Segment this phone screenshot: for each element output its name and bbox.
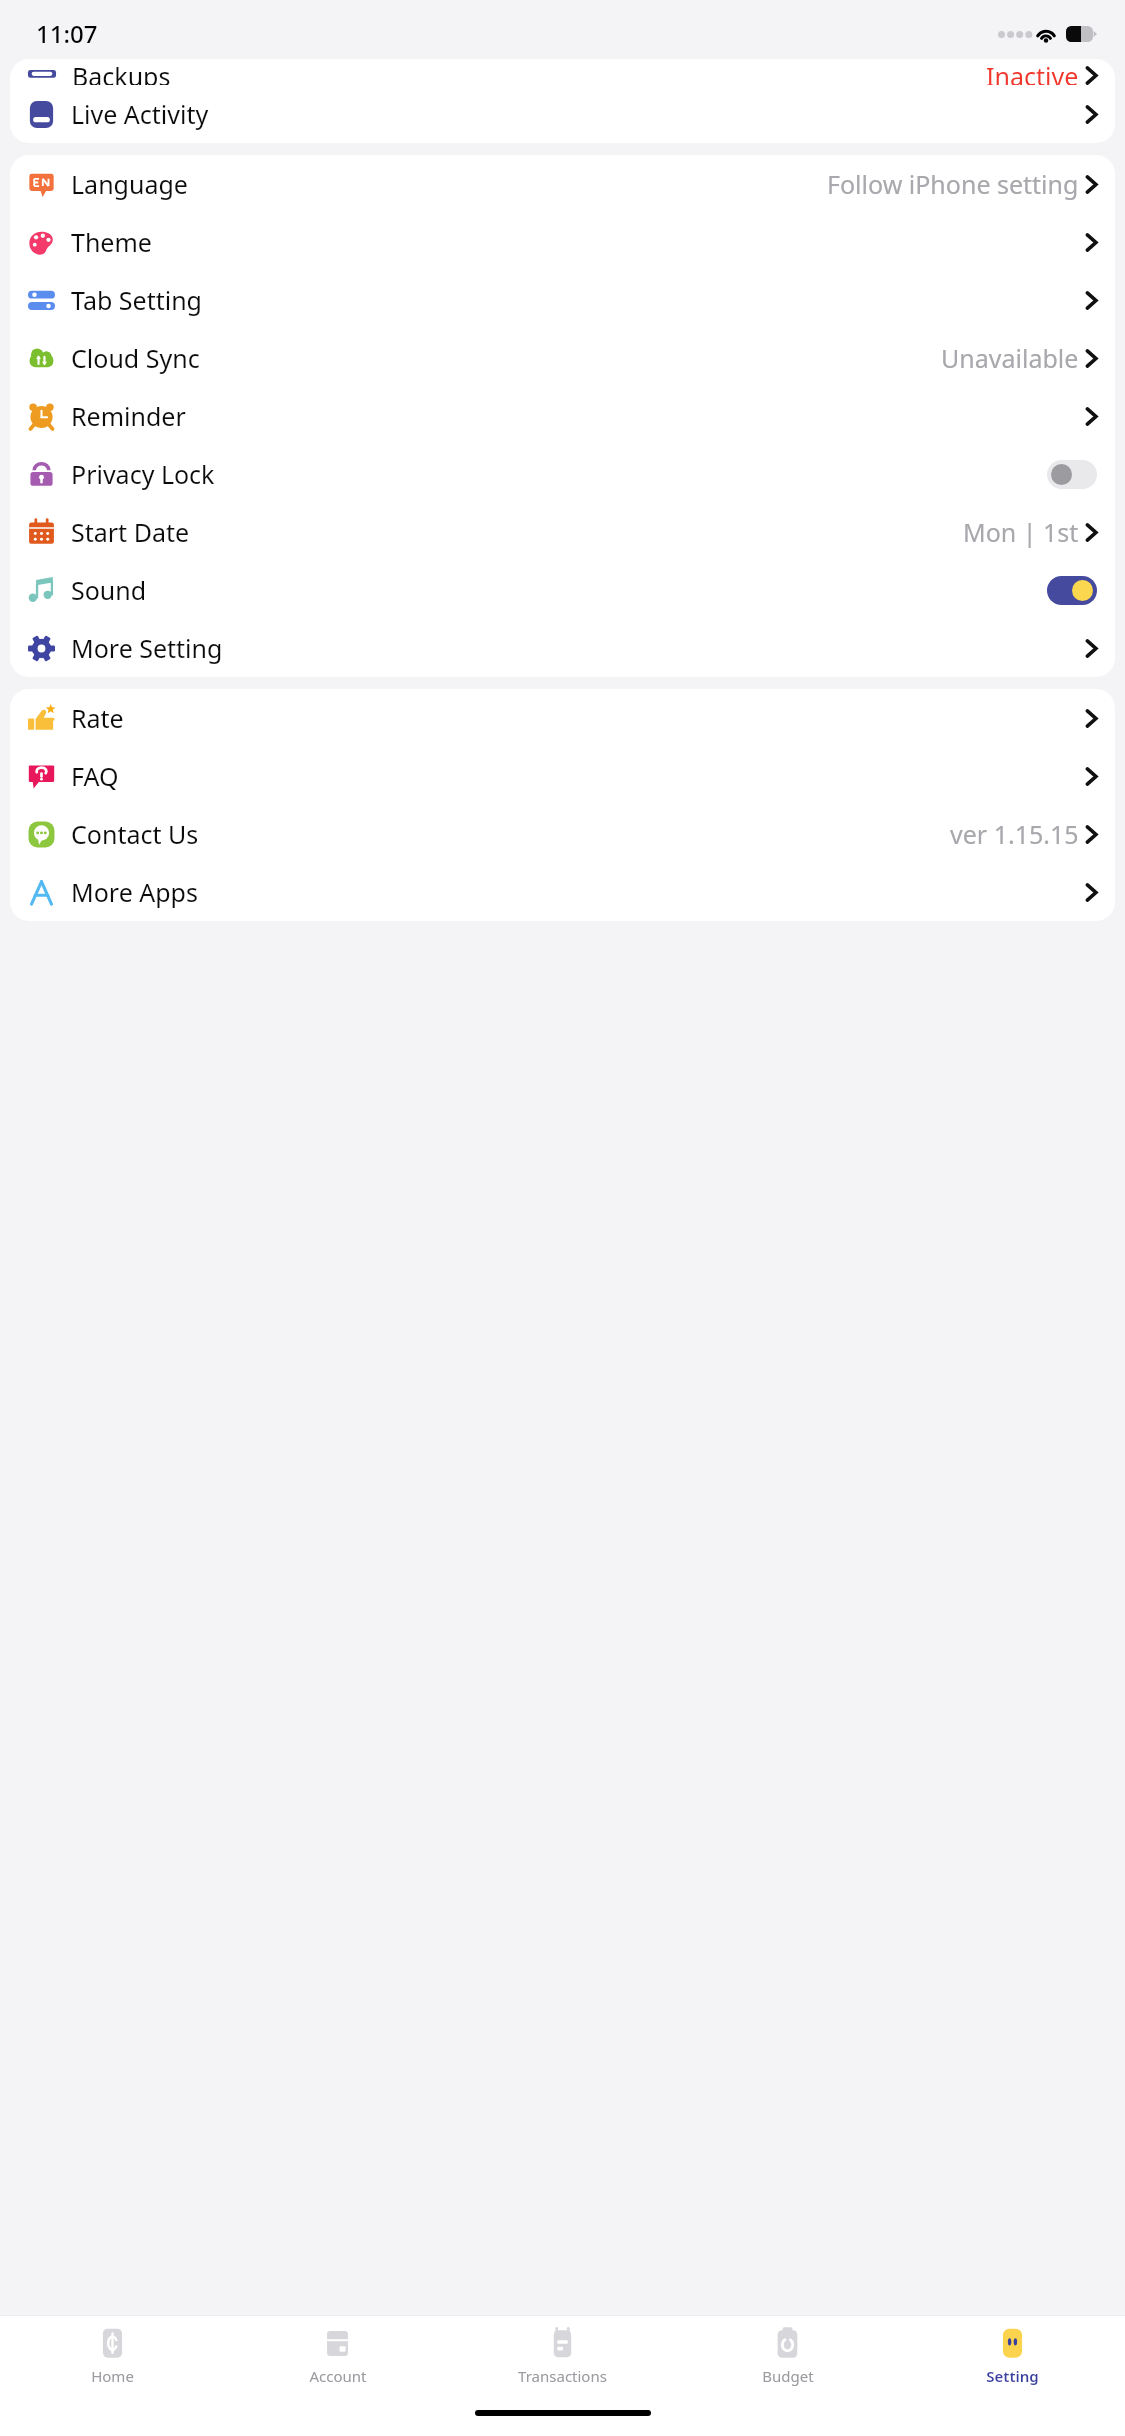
button[interactable]: Switch on <box>1047 576 1097 605</box>
button[interactable]: Sound <box>10 561 1115 619</box>
staticText: Language <box>71 167 188 201</box>
staticText: Contact Us <box>71 817 199 851</box>
staticText: More Apps <box>71 875 198 909</box>
button[interactable]: More Apps <box>10 863 1115 921</box>
staticText: Inactive <box>986 59 1079 85</box>
button[interactable]: More Setting <box>10 619 1115 677</box>
button[interactable]: Theme <box>10 213 1115 271</box>
staticText: Unavailable <box>941 341 1079 375</box>
staticText: Cloud Sync <box>71 341 200 375</box>
staticText: Reminder <box>71 399 186 433</box>
button[interactable]: Reminder <box>10 387 1115 445</box>
button[interactable]: FAQ <box>10 747 1115 805</box>
button[interactable]: Backups <box>10 59 1115 85</box>
button[interactable]: Switch off <box>1047 460 1097 489</box>
button[interactable]: Start Date <box>10 503 1115 561</box>
button[interactable]: Live Activity <box>10 85 1115 143</box>
staticText: Budget <box>762 2366 814 2386</box>
button[interactable]: Setting <box>900 2316 1125 2396</box>
button[interactable]: Privacy Lock <box>10 445 1115 503</box>
staticText: Transactions <box>518 2366 607 2386</box>
button[interactable]: Rate <box>10 689 1115 747</box>
staticText: More Setting <box>71 631 223 665</box>
button[interactable]: Cloud Sync <box>10 329 1115 387</box>
staticText: Mon | 1st <box>963 515 1079 549</box>
staticText: Home <box>91 2366 134 2386</box>
button[interactable]: Contact Us <box>10 805 1115 863</box>
staticText: Rate <box>71 701 124 735</box>
button[interactable]: Transactions <box>450 2316 675 2396</box>
button[interactable]: Language <box>10 155 1115 213</box>
staticText: Account <box>309 2366 367 2386</box>
button[interactable]: Account <box>225 2316 450 2396</box>
staticText: Start Date <box>71 515 190 549</box>
staticText: Backups <box>72 59 171 85</box>
staticText: Tab Setting <box>71 283 202 317</box>
staticText: Privacy Lock <box>71 457 215 491</box>
button[interactable]: Budget <box>675 2316 900 2396</box>
staticText: 11:07 <box>36 17 98 50</box>
staticText: Setting <box>986 2366 1039 2386</box>
button[interactable]: Home <box>0 2316 225 2396</box>
staticText: ver 1.15.15 <box>950 817 1079 851</box>
staticText: FAQ <box>71 759 119 793</box>
staticText: Sound <box>71 573 147 607</box>
button[interactable]: Tab Setting <box>10 271 1115 329</box>
staticText: Follow iPhone setting <box>827 167 1079 201</box>
staticText: Theme <box>71 225 152 259</box>
staticText: Live Activity <box>71 97 209 131</box>
